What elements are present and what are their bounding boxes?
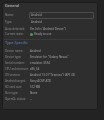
staticText: 512 MB [30,85,41,89]
staticText: Android target: [5,79,30,83]
staticText: General [5,3,19,8]
button[interactable]: OS version: [0,72,104,78]
button[interactable]: Serial number: [0,60,104,66]
staticText: Name: [5,13,14,17]
staticText: -- [30,97,32,101]
button[interactable]: SD card size: [0,84,104,90]
staticText: Auto-detected: [5,27,30,31]
staticText: OS version: [5,73,30,77]
staticText: Android [31,13,42,17]
button[interactable]: Skin type: [0,90,104,96]
button[interactable]: Auto-detected: [0,26,104,32]
staticText: Skin type: [5,91,30,95]
staticText: emulator-5554 [30,61,51,65]
staticText: Android [31,20,42,24]
staticText: None [30,91,38,95]
button[interactable]: Device type: [0,54,104,60]
button[interactable]: OpenGL status: [0,96,104,102]
staticText: x86_64 [30,67,40,71]
staticText: Android 13.0 ("Tiramisu") (API 33) [30,73,76,77]
staticText: Device type: [5,55,30,59]
staticText: OpenGL status: [5,97,30,101]
staticText: Type Specific [5,40,28,45]
staticText: Ready to use [34,32,52,36]
staticText: SD card size: [5,85,30,89]
other: Ready status [30,33,33,36]
staticText: Yes (id is "Android Device") [30,27,66,31]
staticText: Serial number: [5,61,30,65]
staticText: Sony AOSP ATD [30,79,51,83]
staticText: Device name: [5,49,30,53]
staticText: Emulator for "Galaxy Nexus" [30,55,69,59]
staticText: CPU architecture: [5,67,30,71]
staticText: Current state: [5,32,24,36]
button[interactable]: CPU architecture: [0,66,104,72]
staticText: Type: [5,20,13,24]
staticText: Android [30,49,41,53]
button[interactable] [29,12,94,19]
button[interactable]: Device name: [0,48,104,54]
button[interactable]: Android target: [0,78,104,84]
